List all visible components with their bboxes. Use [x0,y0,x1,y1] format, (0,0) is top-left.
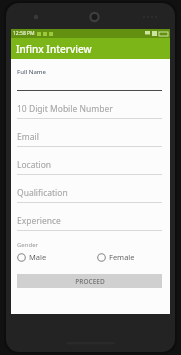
staticText: Experience [17,215,61,227]
staticText: 12:58 PM [13,30,35,37]
button[interactable]: Location [17,156,162,184]
staticText: Infinx Interview [16,42,92,56]
button[interactable]: Qualification [17,184,162,212]
button[interactable]: Email [17,128,162,156]
staticText: Male [29,252,47,262]
button[interactable]: Female [97,252,135,262]
staticText: Full Name [17,68,46,76]
button[interactable]: Male [17,252,47,262]
button[interactable]: Infinx Interview [11,38,170,59]
staticText: Location [17,159,52,171]
staticText: PROCEED [75,277,105,286]
staticText: Gender [17,241,39,249]
button[interactable]: PROCEED [17,274,162,288]
staticText: Email [17,131,39,143]
staticText: Female [109,252,135,262]
staticText: Qualification [17,187,68,199]
button[interactable]: Experience [17,212,162,240]
button[interactable]: 10 Digit Mobile Number [17,100,162,128]
staticText: 10 Digit Mobile Number [17,103,113,115]
button[interactable]: Full Name [17,68,162,100]
